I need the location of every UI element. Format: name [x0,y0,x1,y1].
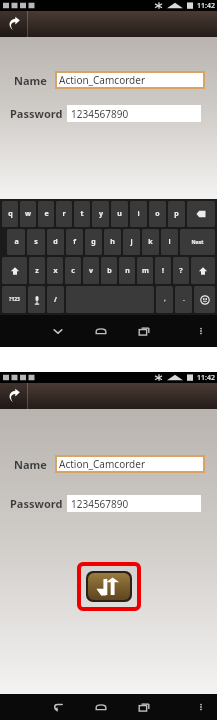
button[interactable]: 1234567890 [67,495,201,512]
staticText: u [117,209,122,219]
staticText: o [155,209,160,219]
staticText: , [164,296,166,303]
staticText: x [53,266,58,276]
staticText: b [107,266,112,276]
button[interactable]: Action_Camcorder [55,71,205,89]
button[interactable]: ?123 [2,286,26,313]
staticText: 11:42 [197,373,215,383]
staticText: 1234567890 [71,107,129,121]
button[interactable]: emoji [194,286,215,313]
staticText: Password [10,106,63,121]
button[interactable]: l [161,229,178,255]
button[interactable]: shift [2,257,27,284]
button[interactable]: Back [0,11,27,37]
staticText: h [110,237,115,247]
button[interactable]: s [27,229,45,255]
staticText: n [125,266,130,276]
button[interactable]: r [56,201,72,227]
button[interactable]: i [130,201,147,227]
button[interactable]: 1234567890 [67,105,201,122]
button[interactable]: h [104,229,121,255]
staticText: l [168,237,171,247]
button[interactable]: a [7,229,25,255]
button[interactable]: m [137,257,153,284]
staticText: ? [179,266,183,276]
staticText: w [25,209,31,219]
button[interactable]: Home [85,315,116,347]
button[interactable]: z [29,257,45,284]
button[interactable]: b [101,257,117,284]
staticText: y [99,209,103,219]
button[interactable]: More options [190,315,211,347]
button[interactable]: k [142,229,159,255]
button[interactable]: ! [155,257,171,284]
button[interactable]: t [74,201,90,227]
staticText: k [148,237,153,247]
button[interactable]: / [47,286,64,313]
button[interactable]: Home [85,694,116,720]
staticText: c [71,266,75,276]
button[interactable]: f [66,229,83,255]
button[interactable]: , [156,286,173,313]
button[interactable]: mic [28,286,45,313]
button[interactable]: c [65,257,81,284]
staticText: a [14,237,19,247]
button[interactable]: More options [190,694,211,720]
staticText: r [62,209,66,219]
staticText: v [89,266,93,276]
staticText: 11:42 [197,1,215,11]
button[interactable]: Action_Camcorder [55,455,205,473]
staticText: Action_Camcorder [59,457,146,471]
button[interactable]: Next [180,229,215,255]
staticText: t [80,209,84,219]
button[interactable]: o [149,201,166,227]
button[interactable]: Back [42,694,73,720]
staticText: Name [14,73,47,88]
button[interactable]: Recent apps [128,315,159,347]
button[interactable]: j [123,229,140,255]
staticText: i [137,209,140,219]
staticText: Action_Camcorder [59,73,146,87]
button[interactable]: shift [191,257,215,284]
button[interactable]: . [175,286,192,313]
button[interactable]: d [47,229,64,255]
staticText: f [73,237,76,247]
staticText: Next [191,239,204,246]
button[interactable]: Back [0,383,27,409]
button[interactable]: n [119,257,135,284]
staticText: Password [10,496,63,511]
button[interactable]: Recent apps [128,694,159,720]
button[interactable]: w [20,201,36,227]
staticText: j [130,237,133,247]
staticText: e [44,209,49,219]
staticText: ! [162,266,164,276]
button[interactable]: u [111,201,128,227]
staticText: m [142,266,149,276]
staticText: . [183,296,185,303]
button[interactable]: x [47,257,63,284]
button[interactable]: ? [173,257,189,284]
staticText: ?123 [9,296,20,303]
staticText: Name [14,457,47,472]
button[interactable]: e [38,201,54,227]
staticText: q [8,209,13,219]
staticText: p [174,209,179,219]
button[interactable]: q [2,201,18,227]
staticText: d [53,237,58,247]
staticText: 1234567890 [71,497,129,511]
button[interactable]: p [168,201,185,227]
button[interactable]: Swap name and password [88,573,130,600]
button[interactable]: del [187,201,215,227]
staticText: s [34,237,38,247]
button[interactable]: g [85,229,102,255]
staticText: / [54,295,57,305]
staticText: z [35,266,39,276]
button[interactable]: v [83,257,99,284]
button[interactable]: Hide keyboard [42,315,73,347]
button[interactable]: y [92,201,109,227]
staticText: g [91,237,96,247]
